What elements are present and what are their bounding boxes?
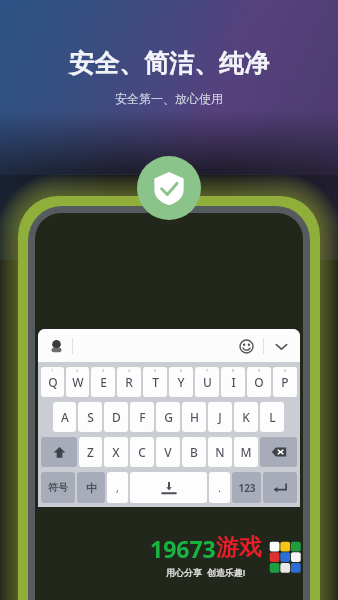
button[interactable]: Hide keyboard bbox=[270, 335, 292, 357]
staticText: W bbox=[72, 374, 84, 390]
button[interactable]: Security shield bbox=[137, 156, 201, 220]
staticText: 9 bbox=[258, 368, 261, 373]
button[interactable]: X bbox=[104, 437, 128, 467]
staticText: K bbox=[242, 409, 250, 425]
staticText: S bbox=[87, 409, 94, 425]
staticText: A bbox=[61, 409, 69, 425]
button[interactable]: 2 bbox=[66, 367, 89, 397]
staticText: J bbox=[218, 409, 222, 425]
staticText: P bbox=[281, 374, 289, 390]
button[interactable]: V bbox=[156, 437, 180, 467]
staticText: 3 bbox=[102, 368, 105, 373]
button[interactable]: B bbox=[182, 437, 206, 467]
button[interactable]: F bbox=[130, 402, 154, 432]
staticText: 中 bbox=[86, 481, 97, 495]
staticText: O bbox=[254, 374, 264, 390]
button[interactable]: M bbox=[234, 437, 258, 467]
button[interactable]: 0 bbox=[273, 367, 297, 397]
button[interactable]: 符号 bbox=[41, 472, 75, 503]
button[interactable]: 8 bbox=[221, 367, 245, 397]
staticText: L bbox=[269, 409, 276, 425]
button[interactable]: Space bbox=[130, 472, 207, 503]
button[interactable]: S bbox=[78, 402, 102, 432]
staticText: E bbox=[100, 374, 107, 390]
button[interactable]: 123 bbox=[232, 472, 261, 503]
staticText: U bbox=[203, 374, 212, 390]
button[interactable]: 9 bbox=[247, 367, 271, 397]
button[interactable]: Emoji bbox=[235, 335, 257, 357]
staticText: 7 bbox=[206, 368, 209, 373]
button[interactable]: . bbox=[209, 472, 230, 503]
staticText: 2 bbox=[76, 368, 79, 373]
button[interactable]: 5 bbox=[143, 367, 167, 397]
staticText: , bbox=[116, 480, 119, 495]
staticText: M bbox=[240, 444, 252, 460]
button[interactable]: D bbox=[104, 402, 128, 432]
button[interactable]: N bbox=[208, 437, 232, 467]
button[interactable]: , bbox=[107, 472, 128, 503]
staticText: B bbox=[190, 444, 198, 460]
button[interactable]: 3 bbox=[91, 367, 115, 397]
button[interactable]: K bbox=[234, 402, 258, 432]
staticText: R bbox=[125, 374, 133, 390]
button[interactable]: L bbox=[260, 402, 284, 432]
button[interactable]: G bbox=[156, 402, 180, 432]
staticText: 123 bbox=[238, 481, 256, 495]
staticText: Q bbox=[48, 374, 58, 390]
staticText: 6 bbox=[180, 368, 183, 373]
staticText: X bbox=[112, 444, 120, 460]
button[interactable]: Backspace bbox=[260, 437, 297, 467]
button[interactable]: Z bbox=[79, 437, 102, 467]
staticText: 8 bbox=[232, 368, 235, 373]
staticText: 安全、简洁、纯净 bbox=[69, 48, 269, 79]
staticText: 安全第一、放心使用 bbox=[115, 91, 223, 106]
button[interactable]: 4 bbox=[117, 367, 141, 397]
staticText: 游戏 bbox=[216, 533, 262, 562]
staticText: Z bbox=[87, 444, 94, 460]
staticText: 0 bbox=[284, 368, 287, 373]
staticText: F bbox=[139, 409, 146, 425]
button[interactable]: 中 bbox=[77, 472, 105, 503]
staticText: 19673 bbox=[150, 533, 216, 564]
staticText: T bbox=[152, 374, 159, 390]
staticText: C bbox=[138, 444, 146, 460]
staticText: 4 bbox=[128, 368, 131, 373]
button[interactable]: 7 bbox=[195, 367, 219, 397]
staticText: 用心分享 创造乐趣! bbox=[166, 566, 246, 578]
staticText: 符号 bbox=[48, 481, 68, 494]
staticText: Y bbox=[177, 374, 185, 390]
staticText: D bbox=[112, 409, 121, 425]
button[interactable]: C bbox=[130, 437, 154, 467]
staticText: . bbox=[218, 480, 221, 495]
staticText: H bbox=[190, 409, 199, 425]
button[interactable]: Keyboard logo bbox=[46, 336, 66, 356]
staticText: I bbox=[231, 374, 236, 390]
staticText: V bbox=[164, 444, 172, 460]
button[interactable]: A bbox=[53, 402, 76, 432]
staticText: G bbox=[164, 409, 173, 425]
button[interactable]: H bbox=[182, 402, 206, 432]
staticText: 1 bbox=[51, 368, 54, 373]
button[interactable]: J bbox=[208, 402, 232, 432]
button[interactable]: 6 bbox=[169, 367, 193, 397]
staticText: 5 bbox=[154, 368, 157, 373]
staticText: N bbox=[215, 444, 225, 460]
button[interactable]: Shift bbox=[41, 437, 77, 467]
button[interactable]: Enter bbox=[263, 472, 297, 503]
button[interactable]: 1 bbox=[41, 367, 64, 397]
